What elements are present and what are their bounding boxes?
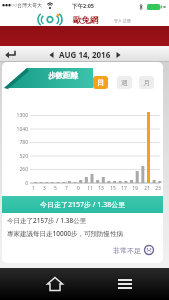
staticText: 3 [43,185,46,192]
staticText: 260 [19,166,28,173]
button[interactable] [41,274,69,294]
staticText: 週 [121,78,128,87]
staticText: 23 [155,185,161,192]
staticText: 登入 註冊 [114,18,132,23]
staticText: 21 [144,185,150,192]
staticText: 7 [65,185,68,192]
button[interactable]: 週 [117,76,132,89]
staticText: 1 [32,185,35,192]
staticText: 9 [77,185,80,192]
staticText: 13 [98,185,104,192]
button[interactable]: 月 [139,76,154,89]
staticText: 780 [19,139,28,146]
staticText: 1040 [16,126,28,133]
staticText: 17 [121,185,127,192]
staticText: AUG 14, 2016 [59,49,111,60]
button[interactable]: AUG 14, 2016 [49,49,121,60]
staticText: 歐兔網 [73,15,99,26]
button[interactable]: 非常不足 [113,245,154,255]
button[interactable]: 日 [93,76,108,89]
staticText: 5 [54,185,57,192]
button[interactable]: 歐兔網 [0,13,169,26]
staticText: ●●●○○ [2,3,18,7]
staticText: 日 [97,78,104,87]
staticText: 台灣大哥大 [17,2,42,8]
staticText: 今日走了2157步 / 1.38公里 [7,216,87,225]
staticText: 1300 [16,112,28,119]
staticText: 19 [132,185,138,192]
staticText: 月 [143,78,150,87]
staticText: 非常不足 [113,246,141,255]
staticText: 步數距離 [48,71,78,80]
button[interactable]: 步數距離 [48,71,78,80]
staticText: 今日走了2157步 / 1.38公里 [40,200,126,210]
staticText: 520 [19,153,28,160]
staticText: 專家建議每日走10000步，可預防慢性病 [7,229,124,238]
staticText: 15 [110,185,116,192]
button[interactable] [111,274,139,294]
staticText: 0 [25,180,28,187]
staticText: 下午2:05 [72,2,94,10]
staticText: 11 [87,185,93,192]
